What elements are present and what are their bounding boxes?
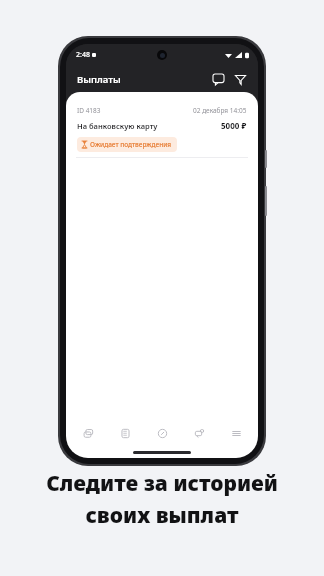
staticText: ID 4183 (77, 106, 101, 115)
staticText: 2:48 (76, 50, 90, 60)
button[interactable]: Orders (73, 420, 103, 446)
staticText: 02 декабря 14:05 (193, 106, 247, 115)
button[interactable]: Payouts (147, 420, 177, 446)
staticText: На банковскую карту (77, 121, 158, 131)
button[interactable]: Support (184, 420, 214, 446)
staticText: своих выплат (85, 501, 239, 530)
button[interactable]: Filter (230, 69, 250, 89)
staticText: Выплаты (77, 73, 121, 86)
button[interactable]: Chat (208, 69, 228, 89)
staticText: Ожидает подтверждения (90, 140, 172, 149)
staticText: 5000 ₽ (221, 120, 247, 131)
button[interactable]: Documents (110, 420, 140, 446)
staticText: Следите за историей (46, 469, 278, 498)
button[interactable]: Menu (221, 420, 251, 446)
button[interactable]: ID 4183 (66, 101, 258, 157)
